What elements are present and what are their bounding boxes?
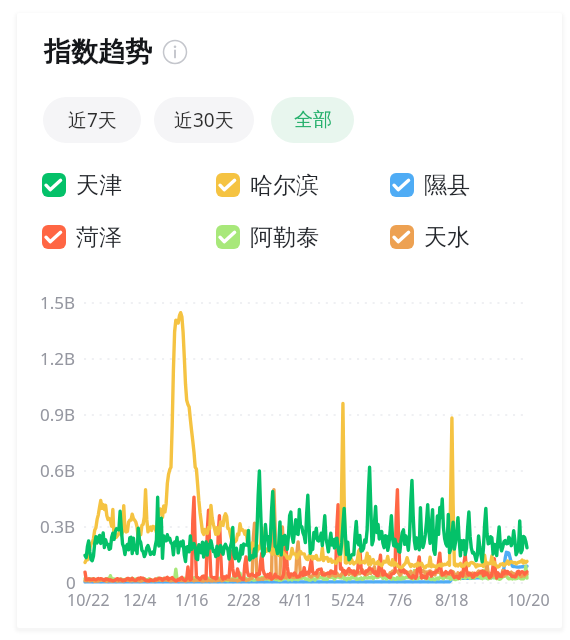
button[interactable]: 天津 (42, 171, 216, 199)
button[interactable]: 天水 (390, 223, 562, 251)
staticText: 1/16 (175, 589, 209, 611)
button[interactable]: 菏泽 (42, 223, 216, 251)
button[interactable]: 隰县 (390, 171, 562, 199)
staticText: 10/22 (67, 589, 110, 611)
staticText: 菏泽 (76, 223, 122, 251)
button[interactable]: 近7天 (43, 97, 141, 143)
staticText: 1.2B (40, 347, 76, 370)
staticText: 10/20 (507, 589, 550, 611)
button[interactable]: Info (162, 39, 188, 65)
staticText: 0.6B (40, 459, 76, 482)
staticText: 0 (66, 571, 76, 594)
button[interactable]: 全部 (271, 97, 354, 143)
staticText: 4/11 (279, 589, 313, 611)
button[interactable]: 近30天 (154, 97, 254, 143)
staticText: 隰县 (424, 171, 470, 199)
staticText: 7/6 (388, 589, 413, 611)
staticText: 12/4 (123, 589, 157, 611)
staticText: 哈尔滨 (250, 171, 319, 199)
staticText: 0.3B (40, 515, 76, 538)
staticText: 天津 (76, 171, 122, 199)
staticText: 2/28 (227, 589, 261, 611)
staticText: 0.9B (40, 403, 76, 426)
staticText: 1.5B (40, 291, 76, 314)
staticText: 近30天 (174, 107, 234, 133)
staticText: 指数趋势 (44, 35, 152, 69)
staticText: 5/24 (331, 589, 365, 611)
button[interactable]: 哈尔滨 (216, 171, 390, 199)
staticText: 近7天 (68, 107, 117, 133)
staticText: 天水 (424, 223, 470, 251)
staticText: 8/18 (435, 589, 469, 611)
button[interactable]: 阿勒泰 (216, 223, 390, 251)
staticText: 阿勒泰 (250, 223, 319, 251)
staticText: 全部 (294, 108, 332, 132)
